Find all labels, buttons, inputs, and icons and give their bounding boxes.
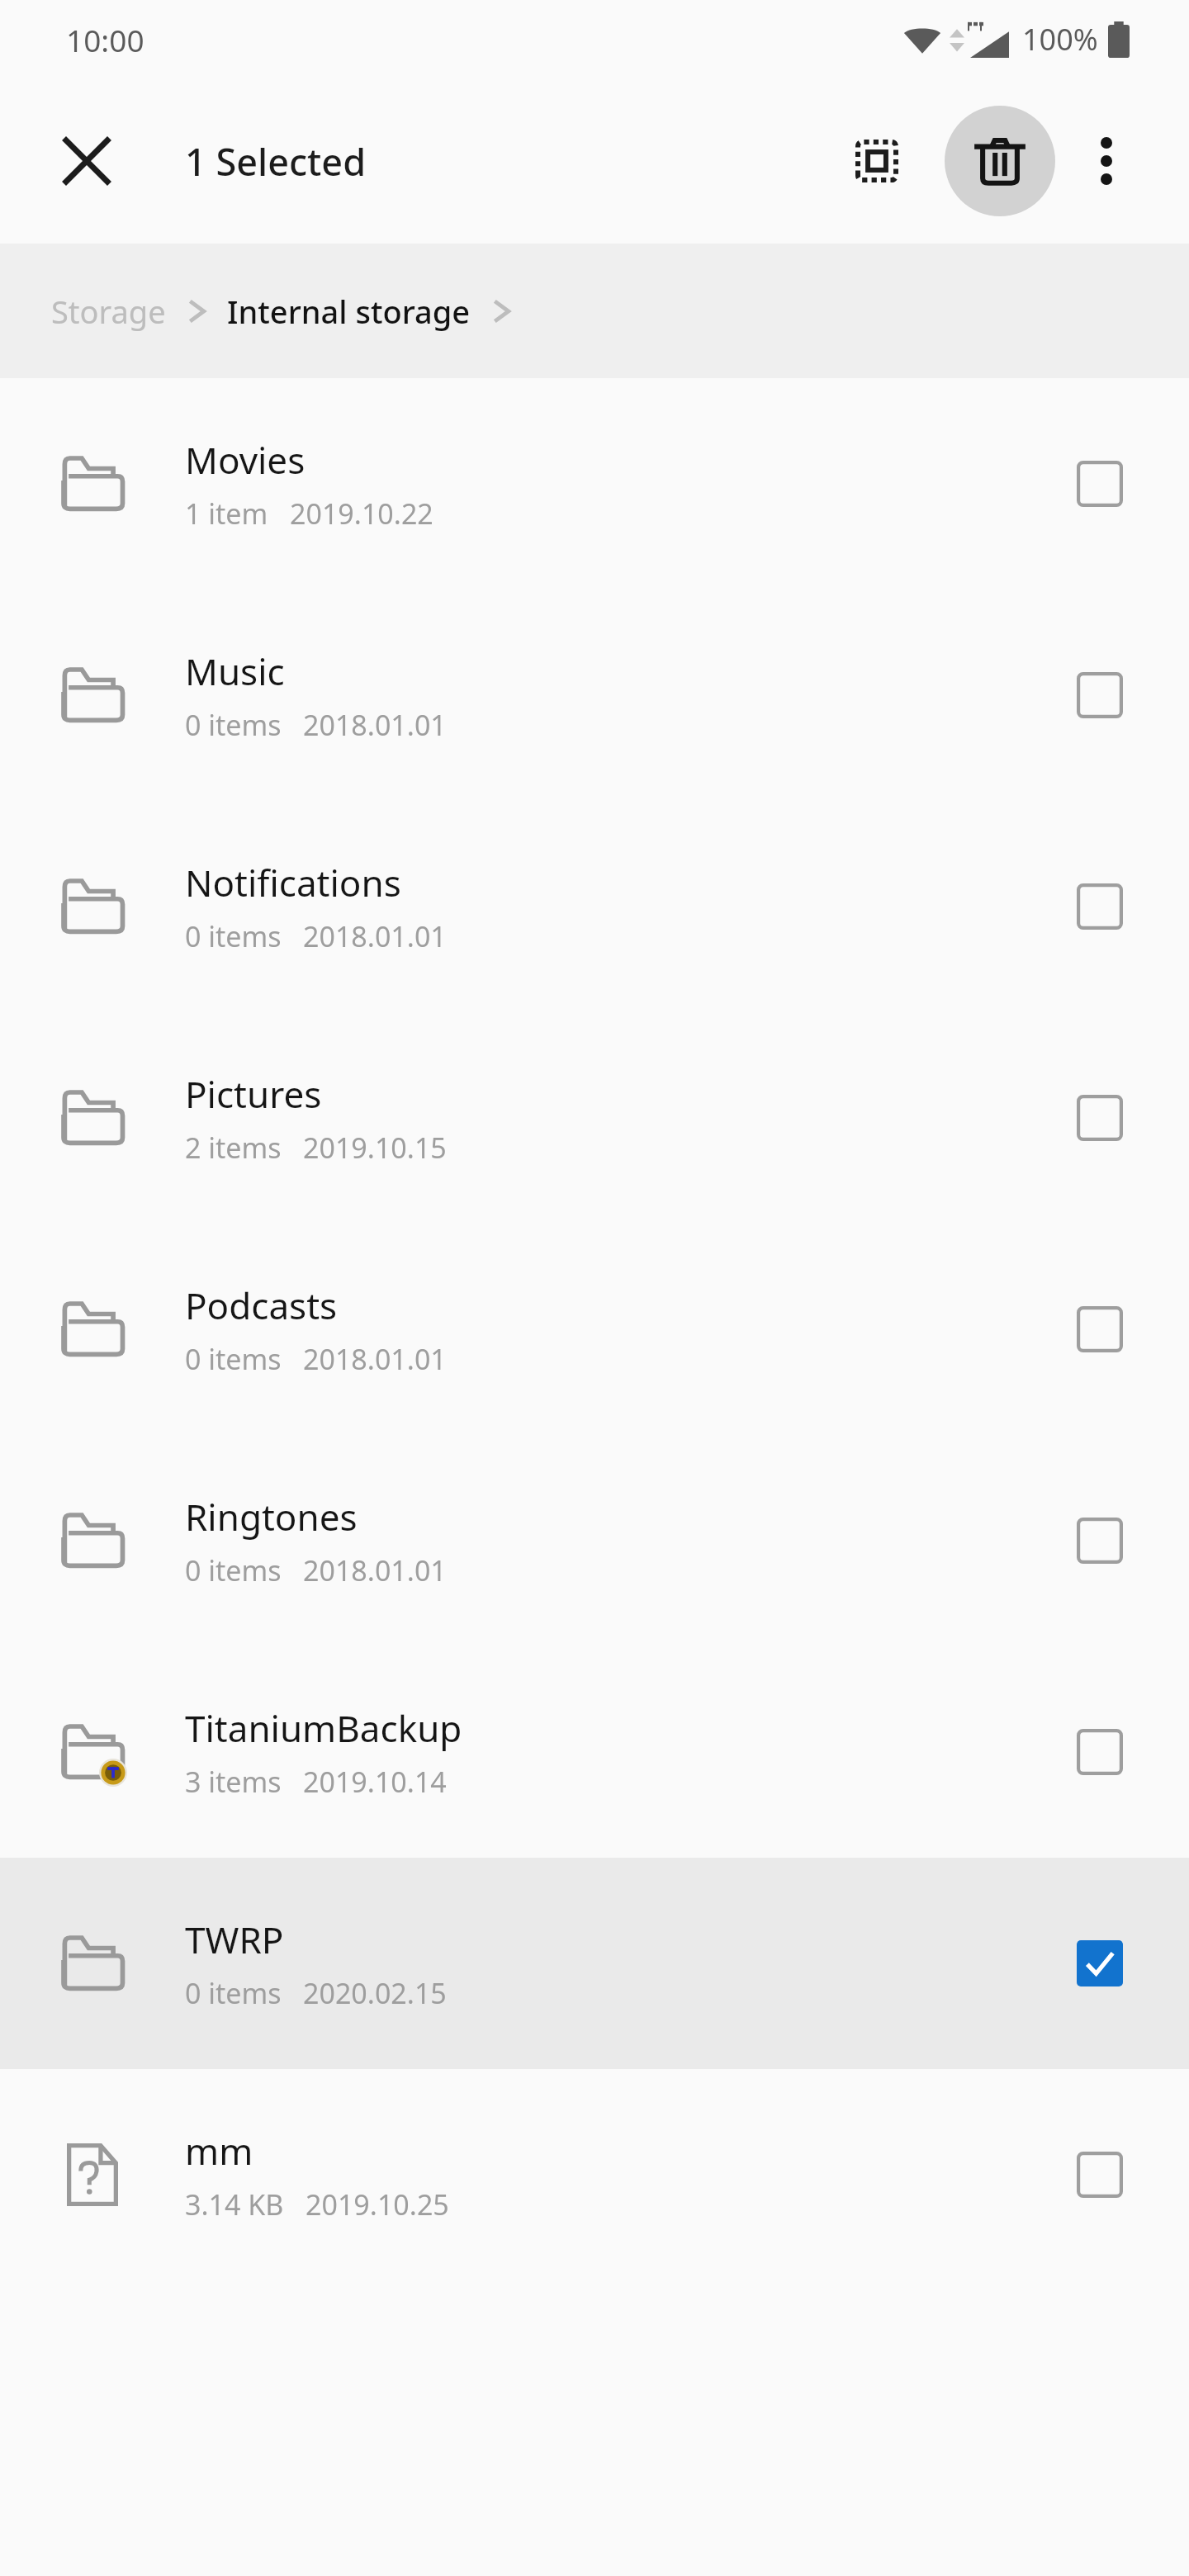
button[interactable]: Pictures	[0, 1012, 1189, 1224]
button[interactable]: Storage	[51, 290, 166, 333]
button[interactable]: More options	[1067, 121, 1146, 201]
staticText: Music	[185, 646, 285, 696]
staticText: 3.14 KB	[185, 2185, 284, 2223]
staticText: Podcasts	[185, 1281, 338, 1330]
staticText: Storage	[51, 290, 166, 333]
button[interactable]: Not selected	[1057, 1286, 1143, 1372]
button[interactable]: Selected	[1057, 1920, 1143, 2006]
button[interactable]: Close selection	[47, 121, 126, 201]
staticText: 2 items	[185, 1129, 282, 1167]
button[interactable]: Notifications	[0, 801, 1189, 1012]
staticText: 2019.10.14	[303, 1763, 447, 1801]
button[interactable]: TWRP	[0, 1858, 1189, 2069]
staticText: 2018.01.01	[303, 1551, 447, 1589]
button[interactable]: Not selected	[1057, 2132, 1143, 2218]
staticText: Ringtones	[185, 1492, 358, 1541]
staticText: 2018.01.01	[303, 706, 447, 744]
staticText: 2018.01.01	[303, 1340, 447, 1378]
button[interactable]: Not selected	[1057, 1709, 1143, 1795]
staticText: 0 items	[185, 917, 282, 955]
button[interactable]: Not selected	[1057, 1075, 1143, 1161]
staticText: 1 item	[185, 495, 268, 533]
button[interactable]: Not selected	[1057, 441, 1143, 527]
staticText: 2019.10.22	[290, 495, 433, 533]
staticText: Movies	[185, 435, 306, 485]
staticText: 2019.10.25	[306, 2185, 449, 2223]
staticText: Notifications	[185, 858, 401, 907]
button[interactable]: TitaniumBackup	[0, 1646, 1189, 1858]
button[interactable]: Not selected	[1057, 652, 1143, 738]
staticText: 2020.02.15	[303, 1974, 447, 2012]
button[interactable]: Movies	[0, 378, 1189, 590]
staticText: TitaniumBackup	[185, 1703, 462, 1753]
button[interactable]: Podcasts	[0, 1224, 1189, 1435]
staticText: 0 items	[185, 1551, 282, 1589]
staticText: mm	[185, 2126, 253, 2176]
staticText: 10:00	[66, 19, 144, 60]
button[interactable]: Delete	[945, 106, 1055, 216]
staticText: Internal storage	[227, 290, 471, 333]
staticText: 3 items	[185, 1763, 282, 1801]
button[interactable]: Music	[0, 590, 1189, 801]
staticText: 2019.10.15	[303, 1129, 447, 1167]
staticText: 0 items	[185, 1340, 282, 1378]
button[interactable]: Internal storage	[227, 290, 471, 333]
button[interactable]: Select all	[831, 115, 923, 207]
staticText: 0 items	[185, 706, 282, 744]
staticText: 0 items	[185, 1974, 282, 2012]
button[interactable]: mm	[0, 2069, 1189, 2280]
button[interactable]: Ringtones	[0, 1435, 1189, 1646]
staticText: 1 Selected	[185, 136, 367, 187]
staticText: 2018.01.01	[303, 917, 447, 955]
staticText: TWRP	[185, 1915, 284, 1964]
button[interactable]: Not selected	[1057, 864, 1143, 949]
staticText: 100%	[1022, 19, 1098, 59]
button[interactable]: Not selected	[1057, 1498, 1143, 1584]
staticText: Pictures	[185, 1069, 322, 1119]
